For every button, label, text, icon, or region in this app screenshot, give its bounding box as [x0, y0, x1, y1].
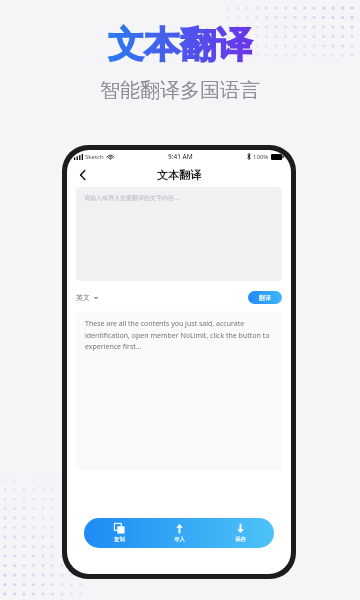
staticText: Sketch	[85, 153, 104, 161]
button[interactable]: 翻译	[248, 291, 282, 304]
staticText: 文本翻译	[157, 168, 201, 182]
button[interactable]: These are all the contents you just said…	[76, 311, 282, 470]
staticText: 文本翻译	[108, 22, 252, 67]
button[interactable]: 请输入或导入您要翻译的文字内容...	[76, 187, 282, 281]
staticText: 翻译	[259, 294, 271, 302]
staticText: 保存	[235, 536, 246, 543]
staticText: These are all the contents you just said…	[85, 319, 273, 351]
other: Save	[235, 523, 246, 534]
staticText: 英文	[76, 293, 90, 302]
staticText: 导入	[174, 536, 185, 543]
button[interactable]: 英文	[76, 293, 103, 302]
staticText: 9:41 AM	[168, 152, 193, 161]
staticText: 100%	[253, 153, 269, 161]
button[interactable]: Import	[153, 520, 205, 546]
button[interactable]: Save	[214, 520, 266, 546]
staticText: 请输入或导入您要翻译的文字内容...	[84, 194, 179, 202]
staticText: 智能翻译多国语言	[100, 78, 260, 103]
button[interactable]: Copy	[93, 520, 145, 546]
button[interactable]: Back	[73, 165, 93, 185]
other: Copy	[114, 523, 125, 534]
other: Import	[174, 523, 185, 534]
staticText: 复制	[114, 536, 125, 543]
